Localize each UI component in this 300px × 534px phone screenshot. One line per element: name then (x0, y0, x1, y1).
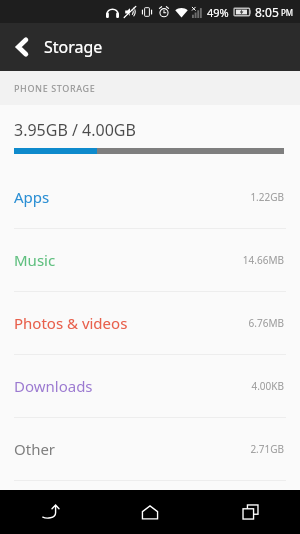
staticText: 14.66MB (242, 253, 284, 267)
button[interactable]: Recent apps (200, 490, 300, 534)
staticText: Photos & videos (14, 313, 248, 333)
staticText: 49% (207, 5, 229, 20)
button[interactable]: Other (0, 418, 300, 480)
button[interactable]: Back (0, 490, 100, 534)
staticText: 8:05 (255, 4, 279, 20)
staticText: Storage (44, 36, 103, 58)
button[interactable]: Back (0, 23, 44, 71)
staticText: 4.00KB (251, 379, 284, 393)
staticText: Apps (14, 187, 250, 207)
button[interactable]: Apps (0, 166, 300, 228)
staticText: PM (281, 7, 294, 18)
staticText: 2.71GB (250, 442, 284, 456)
staticText: 6.76MB (248, 316, 284, 330)
button[interactable]: Music (0, 229, 300, 291)
button[interactable]: Home (100, 490, 200, 534)
button[interactable]: Downloads (0, 355, 300, 417)
staticText: Music (14, 250, 242, 270)
staticText: Other (14, 439, 250, 459)
staticText: Downloads (14, 376, 251, 396)
staticText: PHONE STORAGE (14, 82, 96, 94)
staticText: 1.22GB (250, 190, 284, 204)
staticText: 3.95GB / 4.00GB (14, 119, 136, 141)
button[interactable]: 3.95GB / 4.00GB (0, 105, 300, 166)
button[interactable]: Photos & videos (0, 292, 300, 354)
